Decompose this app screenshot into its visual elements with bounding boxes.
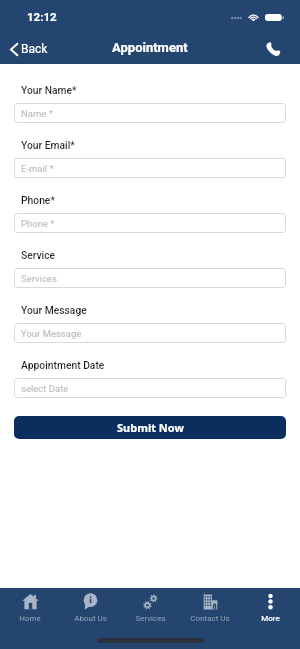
staticText: Your Message — [21, 304, 87, 316]
staticText: E-mail * — [21, 163, 54, 174]
button[interactable]: select Date — [14, 378, 286, 398]
button[interactable]: More — [240, 593, 300, 623]
staticText: Name * — [21, 108, 53, 119]
button[interactable]: Your Message — [14, 323, 286, 343]
staticText: Your Name* — [21, 84, 77, 96]
staticText: Phone* — [21, 194, 55, 206]
staticText: Appointment — [112, 40, 188, 55]
button[interactable]: Services — [14, 268, 286, 288]
staticText: More — [261, 614, 280, 623]
staticText: select Date — [21, 383, 69, 394]
staticText: About Us — [74, 614, 107, 623]
staticText: Services — [135, 614, 166, 623]
staticText: Your Email* — [21, 139, 75, 151]
button[interactable]: Back — [8, 38, 50, 60]
button[interactable]: Home — [0, 593, 60, 623]
staticText: Services — [21, 273, 57, 284]
button[interactable]: Submit Now — [14, 416, 286, 439]
staticText: Appointment Date — [21, 359, 105, 371]
staticText: Contact Us — [190, 614, 230, 623]
button[interactable]: Call — [262, 38, 284, 60]
button[interactable]: About Us — [60, 593, 120, 623]
staticText: 12:12 — [27, 10, 57, 23]
button[interactable]: Name * — [14, 103, 286, 123]
button[interactable]: E-mail * — [14, 158, 286, 178]
staticText: Back — [21, 42, 48, 56]
staticText: Service — [21, 249, 56, 261]
button[interactable]: Contact Us — [180, 593, 240, 623]
button[interactable]: Services — [120, 593, 180, 623]
button[interactable]: Phone * — [14, 213, 286, 233]
staticText: Phone * — [21, 218, 55, 229]
staticText: Your Message — [21, 328, 82, 339]
staticText: Home — [19, 614, 41, 623]
staticText: Submit Now — [117, 420, 184, 435]
